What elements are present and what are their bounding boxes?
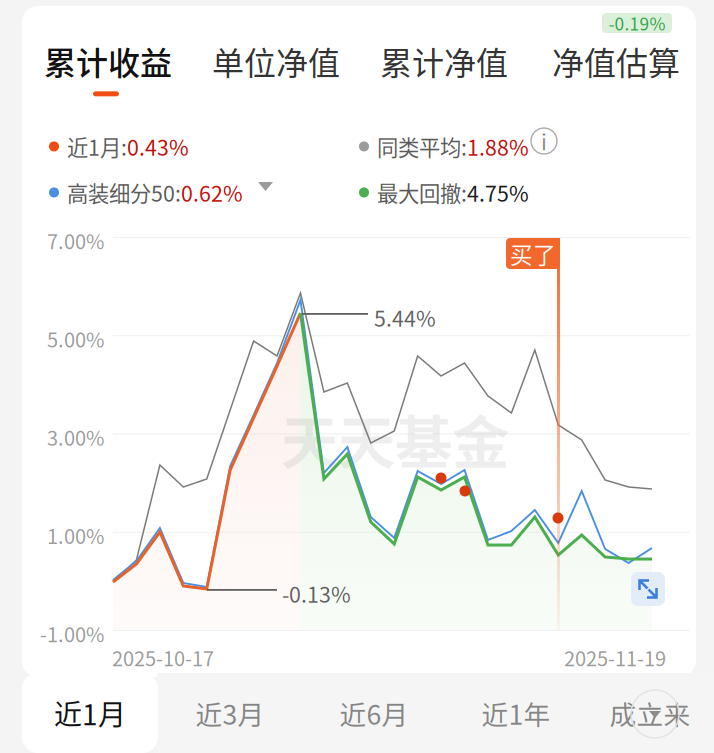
staticText: 近1月 xyxy=(54,693,126,733)
button[interactable]: 单位净值 xyxy=(212,38,342,90)
button[interactable]: 近1月 xyxy=(22,673,158,753)
button[interactable]: 近1年 xyxy=(446,673,586,753)
staticText: 近3月 xyxy=(195,694,264,732)
staticText: 0.43% xyxy=(127,131,189,162)
staticText: 5.44% xyxy=(374,302,436,333)
staticText: 1.00% xyxy=(47,521,104,550)
staticText: 7.00% xyxy=(47,226,104,255)
button[interactable]: Full screen chart xyxy=(631,572,665,606)
staticText: 累计收益 xyxy=(44,38,172,84)
staticText: 2025-10-17 xyxy=(112,643,214,672)
staticText: 成立来 xyxy=(609,694,690,732)
staticText: -0.19% xyxy=(608,10,665,36)
staticText: 买了 xyxy=(510,237,556,270)
staticText: 1.88% xyxy=(467,131,529,162)
staticText: 近6月 xyxy=(339,694,408,732)
staticText: 最大回撤: xyxy=(377,177,467,208)
staticText: i xyxy=(541,126,547,156)
staticText: 天天基金 xyxy=(281,397,509,480)
button[interactable]: 近3月 xyxy=(158,673,302,753)
staticText: 单位净值 xyxy=(212,38,340,84)
button[interactable]: Choose comparison fund xyxy=(258,182,280,204)
staticText: 5.00% xyxy=(47,324,104,353)
staticText: -0.13% xyxy=(282,578,351,609)
staticText: 4.75% xyxy=(467,177,529,208)
button[interactable]: 净值估算 xyxy=(552,38,682,90)
button[interactable]: 近6月 xyxy=(302,673,446,753)
staticText: 高装细分50: xyxy=(67,177,181,208)
button[interactable]: About peer average xyxy=(531,128,557,154)
button[interactable]: 累计净值 xyxy=(380,38,510,90)
staticText: 2025-11-19 xyxy=(564,643,666,672)
staticText: 近1年 xyxy=(481,694,550,732)
staticText: 净值估算 xyxy=(552,38,680,84)
button[interactable]: More date ranges xyxy=(631,690,679,738)
staticText: 近1月: xyxy=(67,131,127,162)
button[interactable]: 成立来 xyxy=(586,673,714,753)
button[interactable]: 累计收益 xyxy=(44,38,174,90)
staticText: 同类平均: xyxy=(377,131,467,162)
staticText: 累计净值 xyxy=(380,38,508,84)
staticText: -1.00% xyxy=(40,619,104,648)
staticText: 0.62% xyxy=(181,177,243,208)
staticText: 3.00% xyxy=(47,422,104,451)
